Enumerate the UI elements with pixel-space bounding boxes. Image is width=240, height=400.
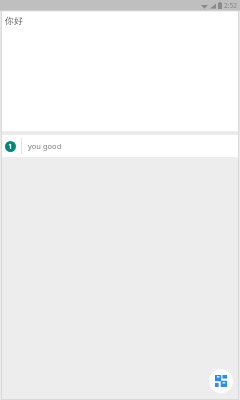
staticText: 2:52 — [224, 1, 237, 10]
staticText: you good — [28, 141, 62, 151]
button[interactable]: you good — [1, 135, 239, 157]
button[interactable]: 你好 — [1, 11, 239, 132]
staticText: 你好 — [5, 15, 23, 26]
button[interactable]: Translate — [209, 369, 233, 393]
